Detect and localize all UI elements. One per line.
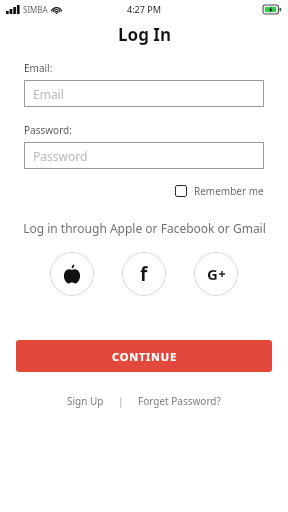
staticText: Email (33, 86, 64, 102)
button[interactable]: Sign Up (63, 392, 108, 410)
staticText: 4:27 PM (127, 3, 161, 15)
button[interactable]: Sign in with Google (194, 252, 238, 296)
staticText: Log In (118, 23, 171, 46)
staticText: Remember me (194, 184, 264, 198)
staticText: Password (33, 148, 88, 164)
button[interactable]: CONTINUE (16, 340, 272, 372)
staticText: CONTINUE (112, 349, 177, 364)
staticText: Password: (24, 123, 72, 137)
staticText: f (140, 261, 148, 287)
button[interactable]: Forget Password? (134, 392, 225, 410)
button[interactable]: Password (24, 142, 264, 169)
button[interactable]: Sign in with Apple (50, 252, 94, 296)
staticText: SIMBA (23, 4, 48, 15)
staticText: Forget Password? (138, 394, 221, 408)
staticText: Email: (24, 61, 53, 75)
staticText: | (118, 394, 124, 408)
button[interactable]: Email (24, 80, 264, 107)
button[interactable]: Remember me (175, 182, 264, 200)
staticText: Sign Up (67, 394, 104, 408)
button[interactable]: Sign in with Facebook (122, 252, 166, 296)
staticText: G (207, 264, 218, 284)
staticText: Log in through Apple or Facebook or Gmai… (23, 220, 266, 236)
